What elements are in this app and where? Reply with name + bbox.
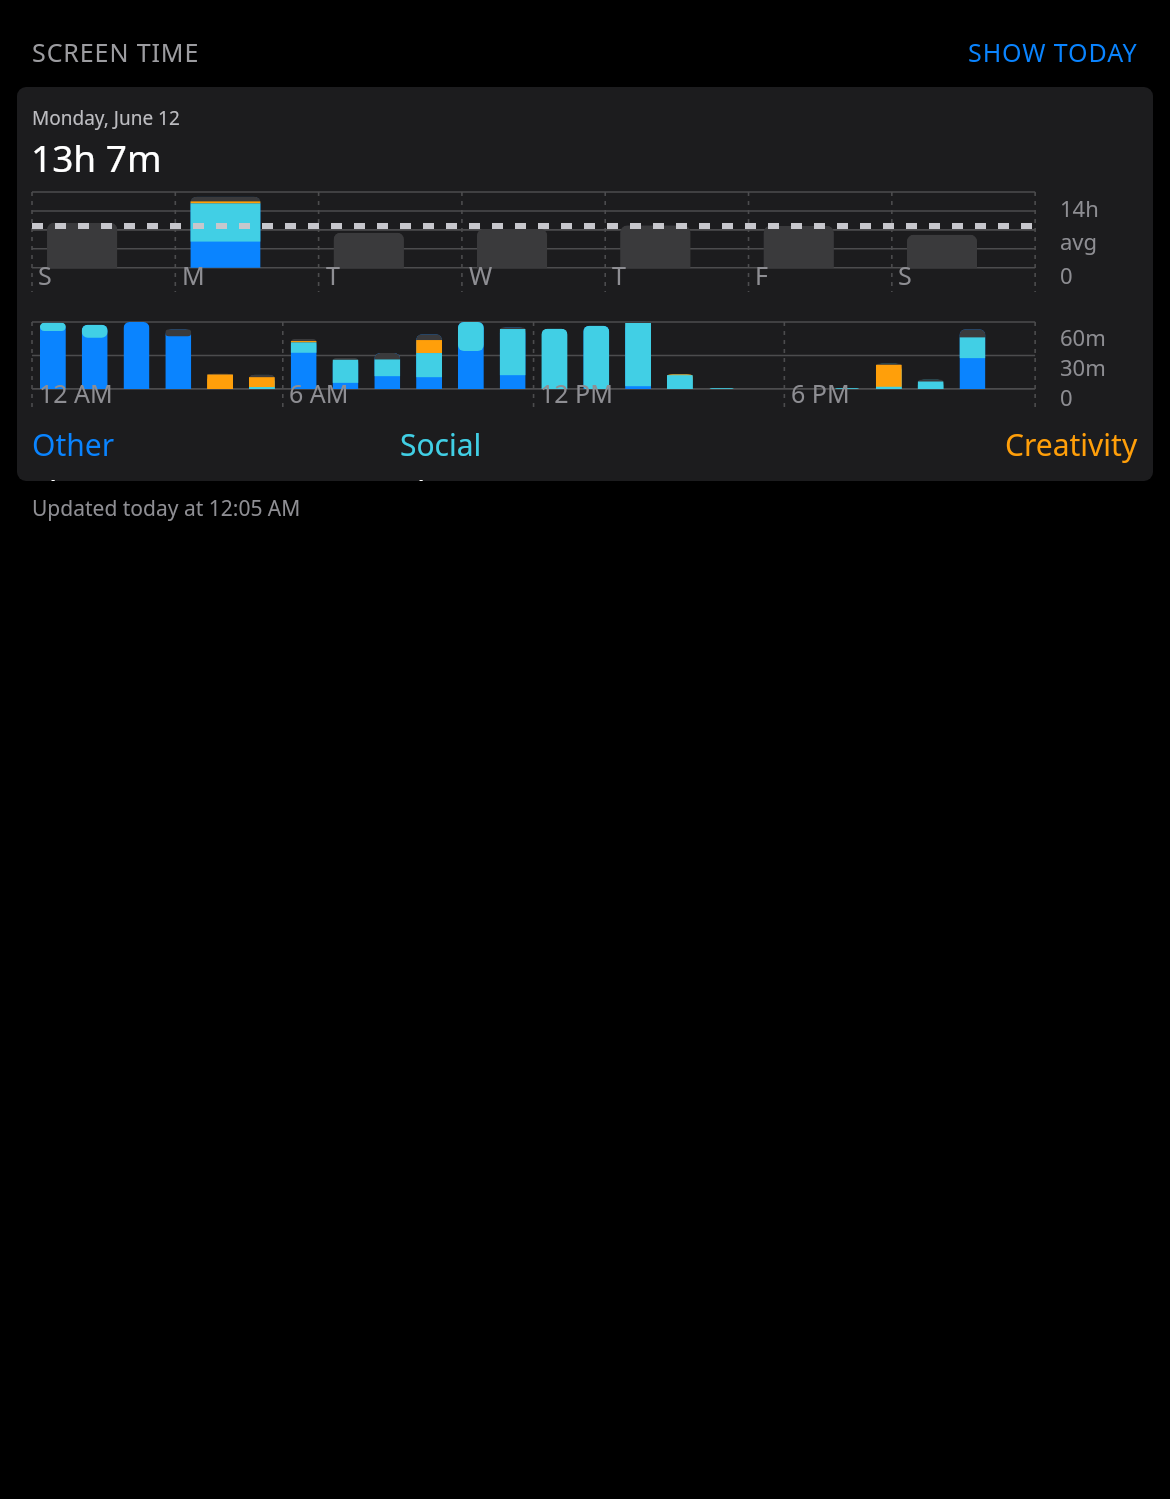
staticText: 0 (1060, 382, 1073, 410)
staticText: avg (1060, 226, 1098, 256)
staticText: 6 PM (791, 376, 850, 410)
staticText: 12 AM (39, 376, 113, 410)
staticText: 6 AM (289, 376, 349, 410)
button[interactable]: Creativity (769, 424, 1138, 481)
staticText: Other (32, 424, 115, 465)
staticText: 30m (1060, 352, 1106, 382)
staticText: Social (400, 424, 482, 465)
staticText: M (182, 258, 205, 292)
staticText: 14h (1060, 193, 1099, 223)
button[interactable]: Social (400, 424, 769, 481)
staticText: 5h 21m (400, 471, 506, 481)
staticText: T (612, 258, 626, 292)
button[interactable]: Monday, June 12 (17, 87, 1153, 481)
staticText: Creativity (1005, 424, 1138, 465)
button[interactable]: Other (32, 424, 400, 481)
staticText: SHOW TODAY (968, 35, 1138, 69)
staticText: W (469, 258, 493, 292)
button[interactable]: SHOW TODAY (968, 35, 1138, 69)
staticText: S (38, 258, 52, 292)
staticText: T (326, 258, 340, 292)
staticText: F (755, 258, 768, 292)
staticText: Updated today at 12:05 AM (32, 494, 301, 523)
staticText: 60m (1060, 322, 1106, 352)
staticText: 6h 13m (32, 471, 138, 481)
staticText: 12 PM (540, 376, 613, 410)
staticText: 0 (1060, 260, 1073, 290)
staticText: SCREEN TIME (32, 35, 200, 69)
staticText: Monday, June 12 (32, 105, 180, 131)
staticText: S (898, 258, 912, 292)
staticText: 13h 7m (31, 132, 162, 182)
